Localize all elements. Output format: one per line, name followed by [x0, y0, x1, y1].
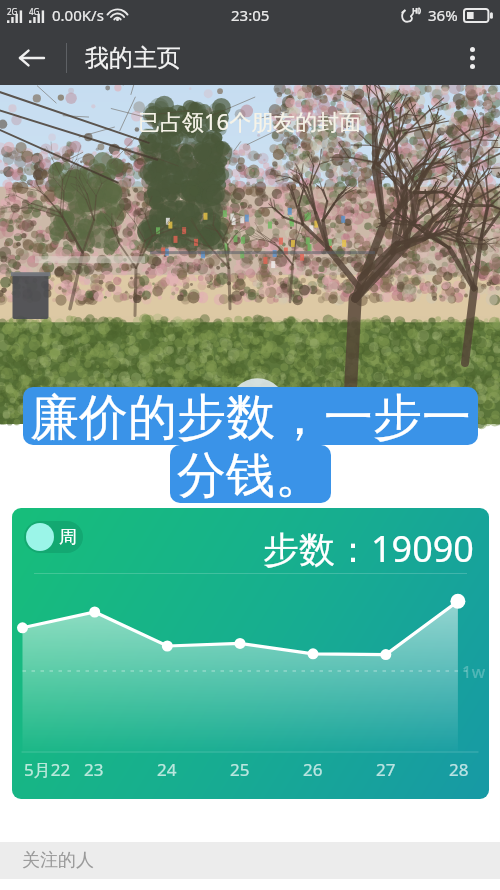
- staticText: 0.00K/s: [52, 5, 104, 25]
- staticText: 廉价的步数，一步一: [30, 387, 471, 445]
- button[interactable]: 关注的人: [0, 842, 500, 879]
- staticText: 分钱。: [177, 445, 324, 503]
- staticText: 2G: [7, 6, 18, 17]
- staticText: 23: [84, 758, 104, 781]
- staticText: 1w: [462, 660, 486, 683]
- staticText: 已占领16个朋友的封面: [138, 106, 362, 136]
- staticText: 关注的人: [22, 849, 94, 872]
- staticText: 25: [230, 758, 250, 781]
- staticText: 周: [59, 526, 77, 549]
- button[interactable]: Back: [0, 30, 62, 85]
- staticText: 5月22: [24, 758, 71, 781]
- staticText: 步数：19090: [263, 524, 474, 573]
- staticText: 4G: [29, 6, 40, 17]
- staticText: 24: [157, 758, 177, 781]
- staticText: 36%: [428, 5, 458, 25]
- staticText: 23:05: [231, 5, 270, 25]
- staticText: 26: [303, 758, 323, 781]
- staticText: 27: [376, 758, 396, 781]
- button[interactable]: 周: [12, 508, 489, 799]
- staticText: 28: [449, 758, 469, 781]
- staticText: 我的主页: [85, 43, 181, 73]
- button[interactable]: 周: [24, 521, 83, 553]
- button[interactable]: More options: [445, 30, 500, 85]
